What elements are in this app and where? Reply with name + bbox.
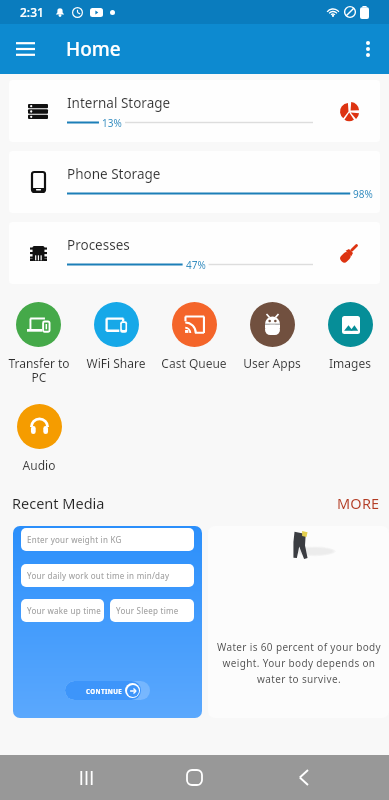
- button[interactable]: Your daily work out time in min/day: [21, 564, 194, 587]
- button[interactable]: Back: [281, 755, 326, 800]
- button[interactable]: Images: [311, 302, 389, 371]
- staticText: 98%: [353, 187, 373, 200]
- staticText: MORE: [337, 493, 380, 513]
- button[interactable]: MORE: [335, 491, 382, 515]
- staticText: WiFi Share: [83, 355, 149, 371]
- button[interactable]: More options: [347, 24, 389, 74]
- staticText: Phone Storage: [67, 165, 161, 183]
- staticText: Internal Storage: [67, 94, 171, 112]
- button[interactable]: Cast Queue: [155, 302, 233, 371]
- button[interactable]: Audio: [0, 404, 78, 473]
- button[interactable]: Phone Storage: [9, 151, 380, 213]
- button[interactable]: Transfer to PC: [0, 302, 77, 386]
- staticText: Processes: [67, 236, 130, 254]
- button[interactable]: Recent apps: [64, 755, 109, 800]
- staticText: Water is 60 percent of your body weight.…: [213, 640, 385, 686]
- button[interactable]: Enter your weight in KG: [21, 528, 194, 551]
- staticText: 13%: [102, 116, 122, 129]
- button[interactable]: CONTINUE: [65, 681, 150, 700]
- staticText: Home: [66, 36, 121, 62]
- button[interactable]: Processes: [9, 222, 380, 284]
- staticText: Your wake up time: [27, 605, 102, 616]
- staticText: Audio: [6, 457, 72, 473]
- button[interactable]: Enter your weight in KG: [13, 526, 202, 718]
- staticText: Enter your weight in KG: [27, 534, 122, 545]
- button[interactable]: Your Sleep time: [110, 599, 194, 622]
- staticText: 47%: [186, 258, 206, 271]
- staticText: CONTINUE: [86, 687, 123, 695]
- button[interactable]: Clean: [318, 222, 380, 284]
- button[interactable]: Your wake up time: [21, 599, 104, 622]
- button[interactable]: Water is 60 percent of your body weight.…: [208, 526, 389, 718]
- staticText: Images: [317, 355, 383, 371]
- staticText: Your Sleep time: [116, 605, 179, 616]
- button[interactable]: Home: [172, 755, 217, 800]
- staticText: User Apps: [239, 355, 305, 371]
- button[interactable]: Internal Storage: [9, 80, 380, 142]
- staticText: Recent Media: [12, 493, 105, 513]
- staticText: Cast Queue: [161, 355, 227, 371]
- button[interactable]: User Apps: [233, 302, 311, 371]
- button[interactable]: Open navigation menu: [0, 24, 50, 74]
- staticText: Your daily work out time in min/day: [27, 570, 170, 581]
- button[interactable]: WiFi Share: [77, 302, 155, 371]
- staticText: 2:31: [20, 4, 44, 20]
- button[interactable]: Analyze storage: [318, 80, 380, 142]
- staticText: Transfer to PC: [6, 355, 72, 386]
